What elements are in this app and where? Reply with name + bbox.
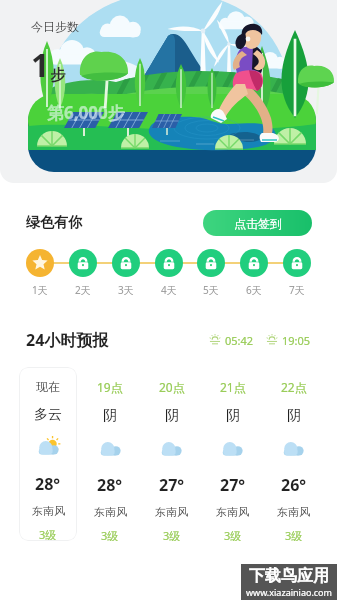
button[interactable]: 2天 [69,249,97,277]
staticText: 3级 [101,528,119,541]
staticText: 阴 [165,407,179,425]
staticText: 第6,000步 [47,101,125,124]
staticText: 现在 [36,379,60,394]
staticText: 24小时预报 [26,329,109,351]
staticText: 东南风 [216,505,249,519]
staticText: 05:42 [225,333,254,348]
button[interactable]: 21点 [202,367,263,541]
staticText: 阴 [103,407,117,425]
staticText: 3级 [163,528,181,541]
staticText: 27° [159,474,185,496]
staticText: 6天 [246,283,262,297]
staticText: 点击签到 [234,216,282,231]
staticText: 东南风 [94,505,127,519]
staticText: 21点 [220,379,246,395]
staticText: 5天 [203,283,219,297]
staticText: 7天 [289,283,305,297]
staticText: 3级 [285,528,303,541]
button[interactable]: 1天 [26,249,54,277]
staticText: 绿色有你 [26,214,82,232]
staticText: 28° [35,473,61,495]
staticText: 阴 [287,407,301,425]
staticText: 3级 [39,527,57,541]
staticText: 多云 [34,406,62,424]
button[interactable]: 现在 [19,367,77,541]
button[interactable]: 6天 [240,249,268,277]
staticText: 东南风 [32,504,65,518]
staticText: 4天 [161,283,177,297]
staticText: 19点 [97,379,123,395]
button[interactable]: 5天 [197,249,225,277]
staticText: 下载鸟应用 [249,566,329,586]
staticText: 20点 [159,379,185,395]
button[interactable]: 3天 [112,249,140,277]
button[interactable]: 20点 [141,367,202,541]
button[interactable]: 22点 [263,367,324,541]
staticText: 2天 [75,283,91,297]
staticText: 步 [50,66,65,85]
staticText: 27° [220,474,246,496]
staticText: 22点 [281,379,307,395]
staticText: 东南风 [277,505,310,519]
staticText: 阴 [226,407,240,425]
staticText: 1天 [32,283,48,297]
staticText: 26° [281,474,307,496]
staticText: 东南风 [155,505,188,519]
staticText: 19:05 [282,333,311,348]
button[interactable]: 7天 [283,249,311,277]
staticText: 1 [31,43,50,87]
staticText: www.xiazainiao.com [246,586,332,598]
staticText: 28° [97,474,123,496]
button[interactable]: 点击签到 [203,210,312,236]
button[interactable]: 4天 [155,249,183,277]
button[interactable]: 19点 [79,367,141,541]
staticText: 3天 [118,283,134,297]
staticText: 今日步数 [31,19,79,34]
staticText: 3级 [224,528,242,541]
